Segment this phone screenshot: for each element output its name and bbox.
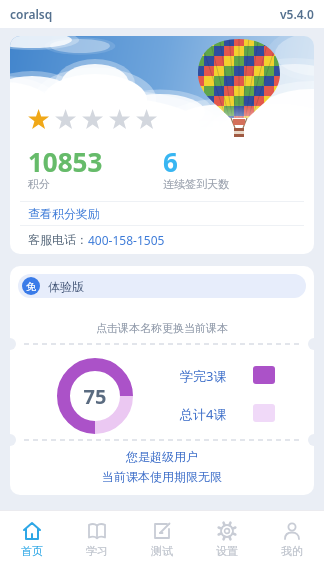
staticText: 学完3课 bbox=[180, 367, 227, 385]
staticText: 您是超级用户 bbox=[10, 449, 314, 464]
staticText: 当前课本使用期限无限 bbox=[10, 469, 314, 484]
button[interactable]: 我的 bbox=[259, 510, 324, 576]
staticText: 体验版 bbox=[48, 279, 84, 294]
staticText: 400-158-1505 bbox=[88, 232, 165, 248]
staticText: 免 bbox=[26, 280, 36, 293]
button[interactable]: 查看积分奖励 bbox=[10, 202, 314, 225]
staticText: coralsq bbox=[10, 6, 53, 22]
staticText: 连续签到天数 bbox=[163, 177, 229, 191]
staticText: 查看积分奖励 bbox=[28, 206, 100, 221]
button[interactable]: 点击课本名称更换当前课本 bbox=[10, 321, 314, 335]
button[interactable]: 测试 bbox=[129, 510, 194, 576]
button[interactable]: 学习 bbox=[64, 510, 129, 576]
staticText: 积分 bbox=[28, 177, 50, 191]
staticText: 75 bbox=[75, 383, 115, 410]
staticText: 总计4课 bbox=[180, 405, 227, 423]
staticText: v5.4.0 bbox=[280, 6, 314, 22]
button[interactable]: 首页 bbox=[0, 510, 64, 576]
button[interactable]: 设置 bbox=[194, 510, 259, 576]
staticText: 测试 bbox=[151, 544, 173, 558]
staticText: 我的 bbox=[281, 544, 303, 558]
staticText: 客服电话： bbox=[28, 232, 88, 247]
button[interactable]: 客服电话： bbox=[10, 226, 314, 254]
staticText: 首页 bbox=[21, 544, 43, 558]
staticText: 6 bbox=[163, 144, 178, 179]
button[interactable]: 免 bbox=[18, 274, 306, 298]
staticText: 10853 bbox=[28, 144, 103, 179]
staticText: 学习 bbox=[86, 544, 108, 558]
staticText: 设置 bbox=[216, 544, 238, 558]
